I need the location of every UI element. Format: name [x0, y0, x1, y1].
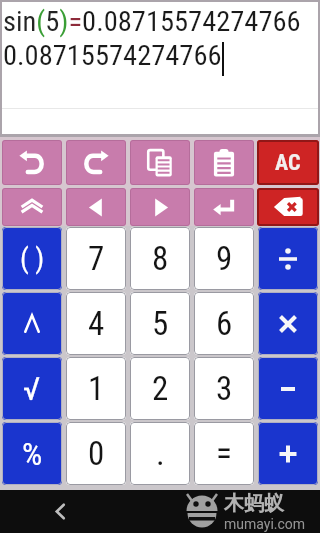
- staticText: mumayi.com: [224, 516, 306, 532]
- staticText: 木蚂蚁: [224, 491, 284, 516]
- button[interactable]: 4: [66, 292, 126, 355]
- button[interactable]: [2, 292, 62, 355]
- staticText: √: [23, 370, 41, 408]
- button[interactable]: 1: [66, 357, 126, 420]
- button[interactable]: =: [194, 422, 254, 485]
- staticText: AC: [275, 150, 301, 176]
- staticText: 6: [216, 304, 233, 343]
- button[interactable]: [2, 140, 62, 185]
- staticText: .: [156, 434, 165, 473]
- button[interactable]: 5: [130, 292, 190, 355]
- button[interactable]: 6: [194, 292, 254, 355]
- staticText: 7: [88, 239, 105, 278]
- staticText: 0.08715574274766: [3, 39, 222, 72]
- button[interactable]: [130, 188, 190, 226]
- button[interactable]: [194, 140, 254, 185]
- staticText: 0: [88, 434, 105, 473]
- staticText: =: [216, 434, 232, 473]
- button[interactable]: 7: [66, 227, 126, 290]
- staticText: sin(5)=0.08715574274766: [3, 5, 301, 38]
- button[interactable]: AC: [257, 140, 319, 185]
- button[interactable]: 2: [130, 357, 190, 420]
- staticText: 8: [152, 239, 169, 278]
- button[interactable]: 9: [194, 227, 254, 290]
- button[interactable]: [130, 140, 190, 185]
- button[interactable]: [258, 292, 318, 355]
- staticText: 2: [152, 369, 169, 408]
- button[interactable]: [2, 188, 62, 226]
- staticText: 3: [216, 369, 233, 408]
- button[interactable]: [66, 188, 126, 226]
- button[interactable]: [66, 140, 126, 185]
- staticText: 5: [152, 304, 169, 343]
- button[interactable]: [257, 188, 319, 226]
- staticText: 9: [216, 239, 233, 278]
- button[interactable]: %: [2, 422, 62, 485]
- button[interactable]: 0: [66, 422, 126, 485]
- button[interactable]: √: [2, 357, 62, 420]
- button[interactable]: ( ): [2, 227, 62, 290]
- button[interactable]: [258, 227, 318, 290]
- staticText: 4: [88, 304, 105, 343]
- button[interactable]: [258, 422, 318, 485]
- button[interactable]: [258, 357, 318, 420]
- button[interactable]: [48, 490, 72, 533]
- staticText: ( ): [20, 242, 45, 275]
- button[interactable]: [194, 188, 254, 226]
- button[interactable]: 3: [194, 357, 254, 420]
- staticText: 1: [88, 369, 105, 408]
- staticText: %: [22, 435, 43, 473]
- button[interactable]: .: [130, 422, 190, 485]
- button[interactable]: 8: [130, 227, 190, 290]
